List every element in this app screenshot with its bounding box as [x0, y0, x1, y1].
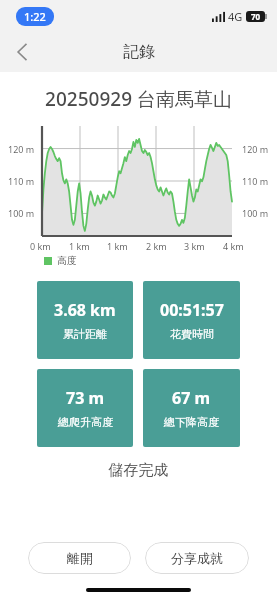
staticText: 20250929 台南馬草山	[0, 86, 277, 112]
staticText: 110 m	[242, 175, 269, 187]
staticText: 00:51:57	[160, 299, 224, 321]
button[interactable]: 67 m	[143, 369, 240, 447]
staticText: 67 m	[172, 387, 211, 409]
staticText: 分享成就	[171, 550, 223, 566]
staticText: 4G	[228, 9, 243, 24]
button[interactable]: 分享成就	[145, 542, 249, 574]
staticText: 1 km	[107, 240, 128, 252]
staticText: 120 m	[242, 143, 269, 155]
staticText: 記錄	[123, 42, 155, 62]
staticText: 總爬升高度	[58, 415, 113, 429]
staticText: 110 m	[8, 175, 35, 187]
staticText: 花費時間	[170, 327, 214, 341]
staticText: 1 km	[69, 240, 90, 252]
staticText: 0 km	[30, 240, 51, 252]
staticText: 4 km	[223, 240, 244, 252]
staticText: 3.68 km	[54, 299, 116, 321]
button[interactable]: 3.68 km	[37, 281, 133, 359]
staticText: 73 m	[66, 387, 105, 409]
staticText: 70	[251, 11, 261, 22]
staticText: 100 m	[8, 207, 35, 219]
button[interactable]: 00:51:57	[143, 281, 240, 359]
staticText: 總下降高度	[164, 415, 219, 429]
staticText: 2 km	[146, 240, 167, 252]
staticText: 120 m	[8, 143, 35, 155]
staticText: 累計距離	[63, 327, 107, 341]
button[interactable]: 離開	[28, 542, 131, 574]
staticText: 離開	[67, 550, 93, 566]
staticText: 100 m	[242, 207, 269, 219]
staticText: 1:22	[24, 9, 46, 24]
button[interactable]: Back	[0, 32, 44, 72]
staticText: 儲存完成	[0, 461, 277, 480]
button[interactable]: 73 m	[37, 369, 133, 447]
staticText: 3 km	[184, 240, 205, 252]
staticText: 高度	[57, 254, 77, 267]
